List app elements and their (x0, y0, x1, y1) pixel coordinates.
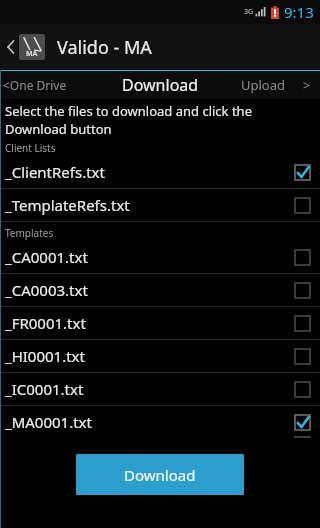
staticText: _TemplateRefs.txt (5, 195, 130, 215)
button[interactable]: _TemplateRefs.txt (0, 189, 320, 222)
staticText: Select the files to download and click t… (5, 102, 252, 120)
staticText: Templates (5, 226, 54, 240)
staticText: _ClientRefs.txt (5, 162, 105, 182)
staticText: MA (26, 49, 38, 59)
button[interactable]: _HI0001.txt (0, 340, 320, 373)
staticText: 3G (244, 7, 254, 17)
staticText: Download (122, 74, 199, 96)
button[interactable]: Download (76, 454, 244, 495)
staticText: _CA0003.txt (5, 280, 88, 300)
button[interactable]: _FR0001.txt (0, 307, 320, 340)
staticText: Upload (241, 76, 286, 94)
staticText: Valido - MA (57, 35, 152, 60)
button[interactable]: _CA0001.txt (0, 241, 320, 274)
staticText: Download button (5, 120, 112, 138)
button[interactable]: Download (122, 74, 199, 96)
staticText: <One Drive (3, 77, 67, 93)
staticText: > (303, 77, 310, 93)
button[interactable]: Next tab (298, 77, 314, 93)
button[interactable]: _ClientRefs.txt (0, 156, 320, 189)
staticText: _HI0001.txt (5, 346, 85, 366)
staticText: _MA0001.txt (5, 412, 92, 432)
staticText: Download (124, 465, 196, 485)
button[interactable]: <One Drive (0, 71, 96, 99)
staticText: _IC0001.txt (5, 379, 84, 399)
staticText: Client Lists (5, 141, 56, 155)
staticText: _CA0001.txt (5, 247, 88, 267)
button[interactable]: _CA0003.txt (0, 274, 320, 307)
staticText: 9:13 (284, 2, 314, 22)
staticText: _FR0001.txt (5, 313, 86, 333)
button[interactable]: _IC0001.txt (0, 373, 320, 406)
button[interactable]: MA (0, 24, 320, 70)
button[interactable]: Upload (241, 76, 286, 94)
button[interactable]: _MA0001.txt (0, 406, 320, 438)
